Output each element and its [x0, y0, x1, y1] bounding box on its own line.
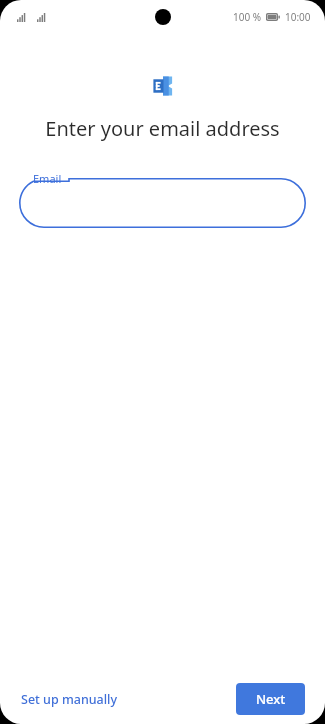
staticText: Set up manually [21, 691, 118, 708]
staticText: Next [256, 690, 286, 708]
staticText: Enter your email address [45, 115, 280, 142]
staticText: 10:00 [285, 10, 311, 24]
button[interactable]: Email [19, 170, 306, 228]
staticText: 100 % [233, 10, 262, 24]
button[interactable]: Set up manually [10, 684, 129, 715]
button[interactable]: Next [236, 683, 305, 715]
staticText: Email [33, 171, 62, 186]
